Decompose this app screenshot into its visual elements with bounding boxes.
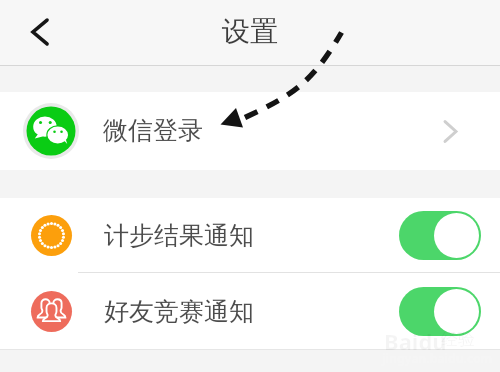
staticText: 经验	[441, 329, 475, 350]
button[interactable]: 微信登录	[0, 92, 500, 170]
button[interactable]: Friend competition notification toggle	[399, 287, 481, 336]
button[interactable]: 计步结果通知	[0, 198, 500, 272]
staticText: 设置	[222, 14, 278, 49]
staticText: Baidu	[384, 326, 447, 356]
button[interactable]: 好友竞赛通知	[0, 273, 500, 349]
staticText: 计步结果通知	[104, 220, 254, 251]
staticText: 微信登录	[103, 115, 203, 146]
button[interactable]: Step result notification toggle	[399, 211, 481, 260]
button[interactable]: Back	[0, 1, 78, 66]
staticText: 好友竞赛通知	[104, 296, 254, 327]
